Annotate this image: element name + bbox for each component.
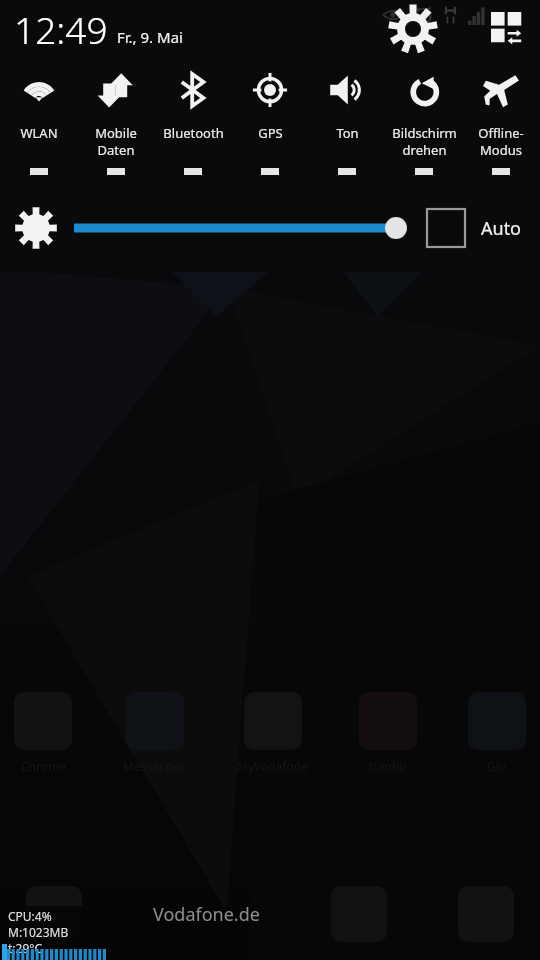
staticText: Mobile Daten: [95, 124, 137, 159]
button[interactable]: Mobile Daten: [78, 58, 154, 190]
staticText: Fr., 9. Mai: [117, 27, 183, 47]
staticText: Bildschirm drehen: [392, 124, 457, 159]
staticText: Glo: [487, 758, 507, 774]
staticText: WLAN: [20, 124, 58, 142]
staticText: GPS: [258, 124, 283, 142]
staticText: t:29°C: [8, 940, 42, 956]
staticText: Offline- Modus: [478, 124, 524, 159]
staticText: tumblr: [369, 758, 408, 774]
staticText: M:1023MB: [8, 924, 69, 940]
button[interactable]: GPS: [232, 58, 308, 190]
button[interactable]: Auto brightness: [423, 205, 469, 251]
button[interactable]: Offline- Modus: [463, 58, 539, 190]
button[interactable]: App: [26, 886, 82, 942]
button[interactable]: Chrome: [14, 692, 72, 774]
button[interactable]: Show all toggles: [484, 5, 532, 53]
staticText: Bluetooth: [163, 124, 224, 142]
button[interactable]: Bildschirm drehen: [386, 58, 462, 190]
staticText: 12:49: [14, 4, 108, 54]
button[interactable]: Glo: [468, 692, 526, 774]
staticText: MyVodafone: [237, 758, 308, 774]
button[interactable]: Bluetooth: [155, 58, 231, 190]
staticText: CPU:4%: [8, 908, 52, 924]
button[interactable]: WLAN: [1, 58, 77, 190]
button[interactable]: tumblr: [359, 692, 417, 774]
staticText: Auto: [481, 216, 522, 241]
button[interactable]: MyVodafone: [237, 692, 308, 774]
button[interactable]: Brightness: [14, 206, 58, 250]
staticText: Ton: [336, 124, 359, 142]
button[interactable]: Settings: [389, 5, 437, 53]
button[interactable]: Brightness slider: [72, 208, 409, 248]
button[interactable]: Ton: [309, 58, 385, 190]
staticText: Chrome: [21, 758, 66, 774]
staticText: Vodafone.de: [153, 902, 260, 927]
button[interactable]: Messenger: [123, 692, 186, 774]
staticText: Messenger: [123, 758, 186, 774]
